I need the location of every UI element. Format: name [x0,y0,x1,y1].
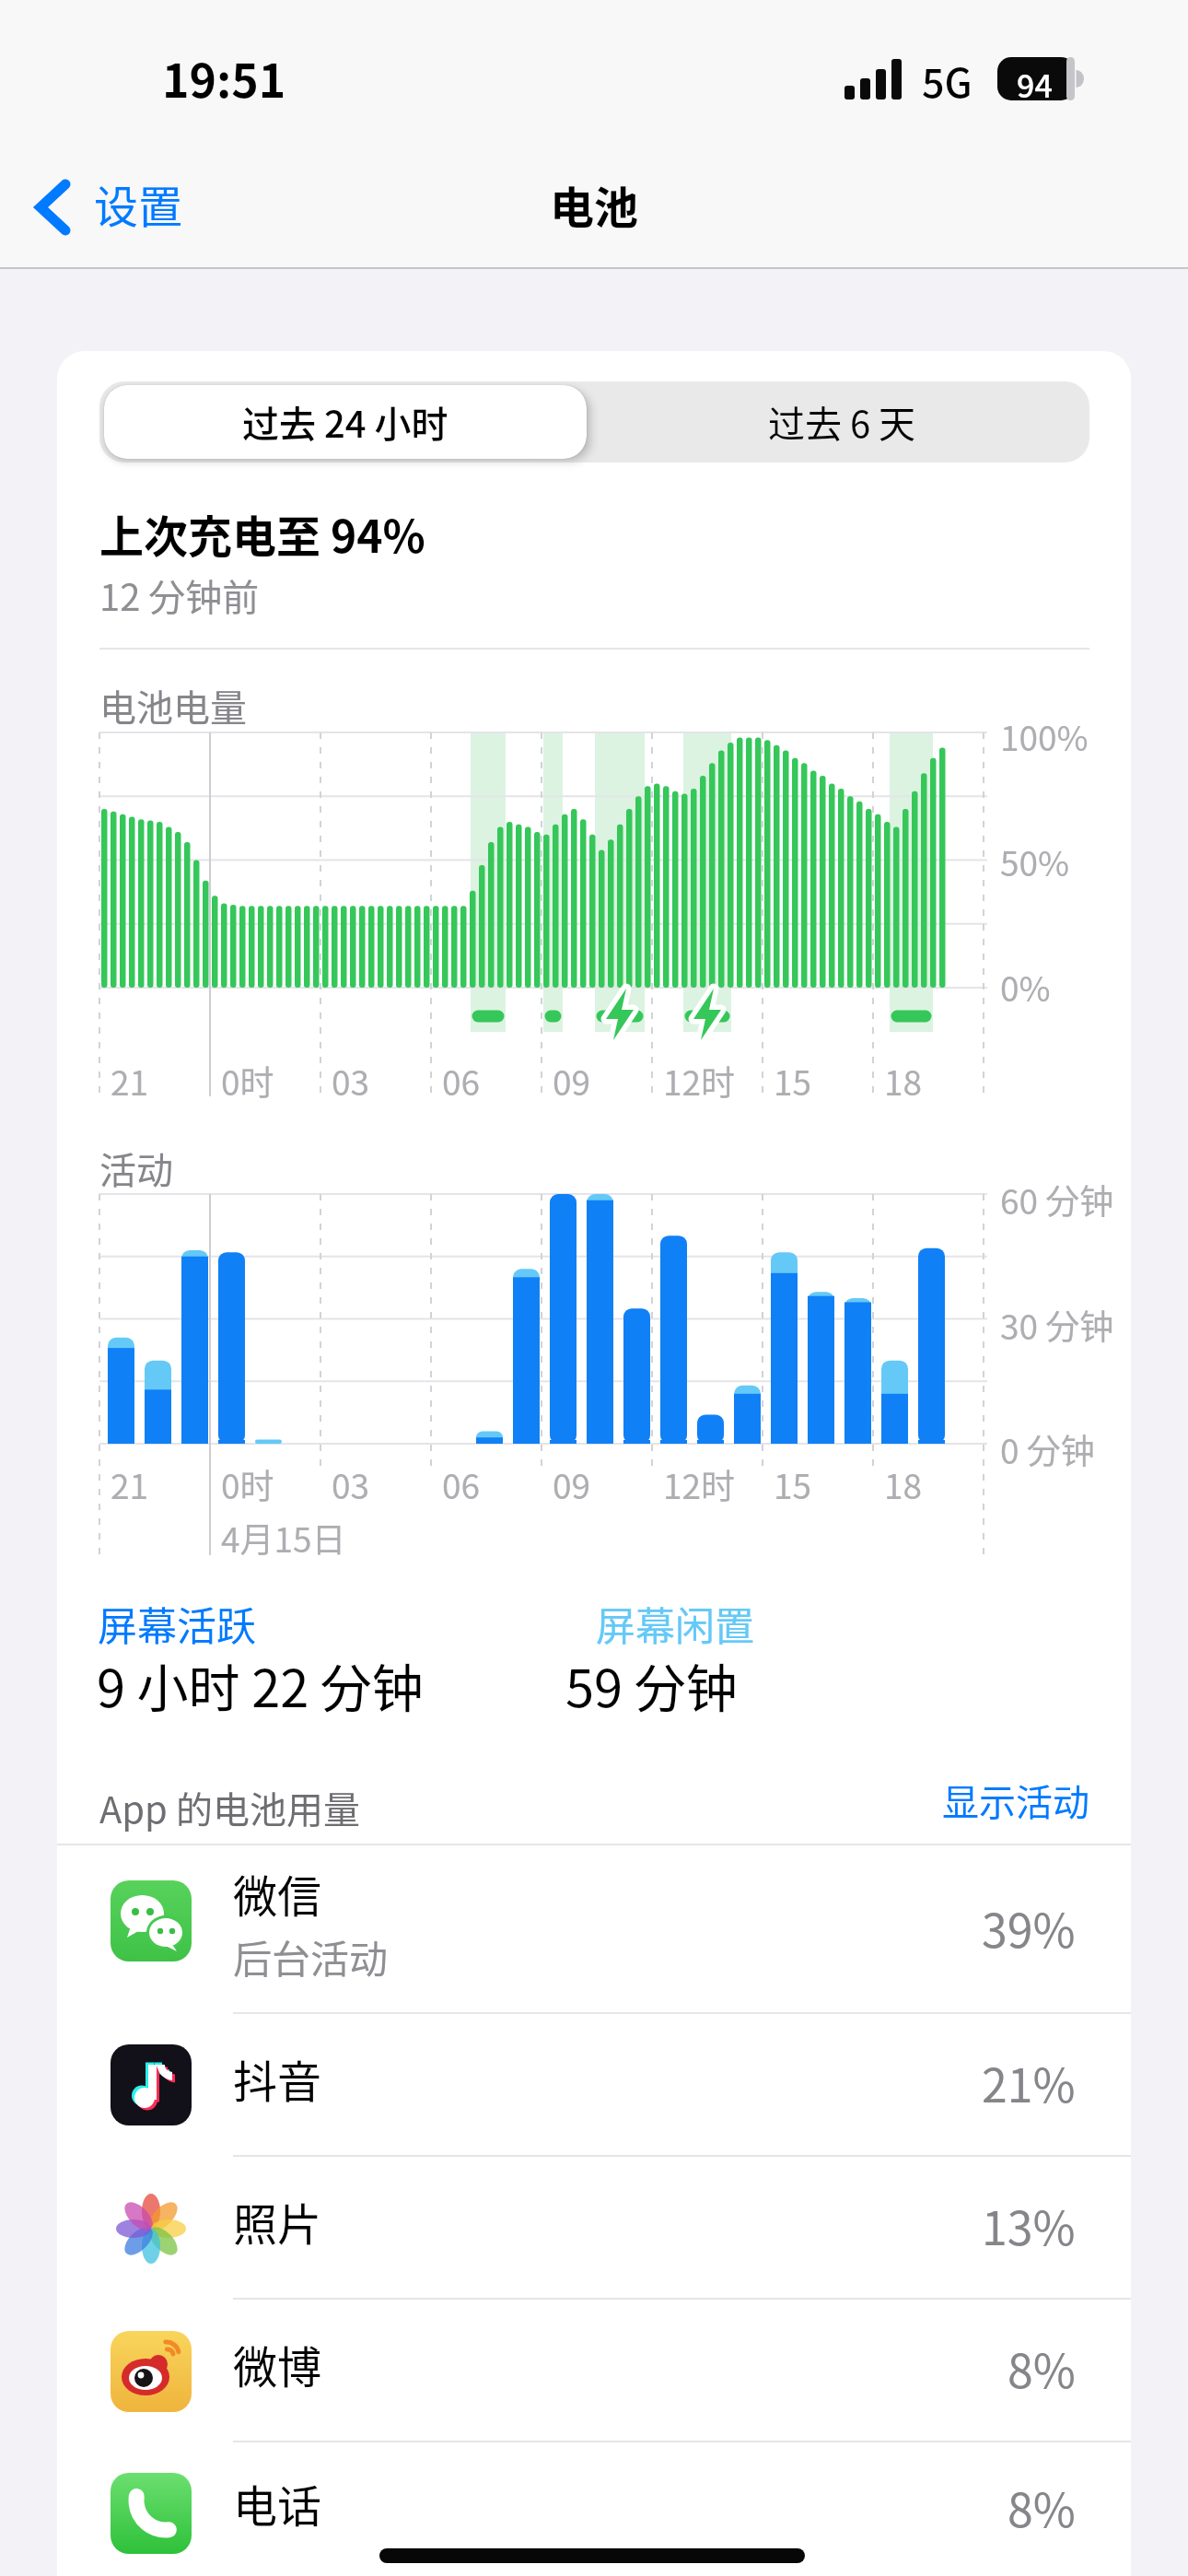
button[interactable]: 显示活动 [829,1774,1089,1829]
staticText: 设置 [94,171,183,236]
staticText: 12时 [663,1459,736,1509]
button[interactable] [594,385,1089,459]
staticText: 94 [1017,62,1053,107]
button[interactable] [57,2013,1131,2155]
staticText: 0% [1000,962,1051,1012]
staticText: App 的电池用量 [99,1781,360,1834]
staticText: 屏幕活跃 [98,1595,256,1652]
staticText: 09 [553,1056,591,1106]
staticText: 微博 [233,2332,322,2396]
button[interactable] [104,385,587,459]
button[interactable] [57,2299,1131,2441]
staticText: 抖音 [233,2046,322,2111]
staticText: 21 [111,1056,149,1106]
staticText: 微信 [233,1861,322,1926]
staticText: 0 分钟 [1000,1424,1095,1474]
button[interactable] [18,166,221,240]
staticText: 电池 [550,172,639,237]
staticText: 03 [332,1056,370,1106]
staticText: 50% [1000,837,1070,886]
staticText: 电池电量 [99,679,247,732]
staticText: 电话 [233,2471,322,2535]
staticText: 06 [442,1056,481,1106]
staticText: 过去 6 天 [768,395,916,449]
button[interactable] [57,2441,1131,2576]
staticText: 30 分钟 [1000,1300,1114,1350]
staticText: 显示活动 [942,1774,1089,1827]
staticText: 100% [1000,711,1089,761]
staticText: 9 小时 22 分钟 [97,1647,424,1722]
staticText: 15 [774,1459,812,1509]
staticText: 过去 24 小时 [242,395,448,449]
staticText: 后台活动 [233,1928,389,1985]
staticText: 8% [1007,2335,1076,2401]
staticText: 0时 [221,1056,274,1106]
staticText: 18 [884,1459,923,1509]
staticText: 09 [553,1459,591,1509]
staticText: 5G [922,52,973,109]
staticText: 12时 [663,1056,736,1106]
staticText: 0时 [221,1459,274,1509]
staticText: 上次充电至 94% [99,501,425,566]
staticText: 15 [774,1056,812,1106]
staticText: 12 分钟前 [99,568,260,622]
staticText: 59 分钟 [565,1647,738,1722]
staticText: 4月15日 [221,1513,346,1563]
button[interactable] [57,1845,1131,2013]
staticText: 18 [884,1056,923,1106]
staticText: 21 [111,1459,149,1509]
staticText: 8% [1007,2474,1076,2540]
staticText: 03 [332,1459,370,1509]
staticText: 39% [982,1894,1076,1961]
staticText: 照片 [233,2189,322,2254]
staticText: 06 [442,1459,481,1509]
staticText: 19:51 [162,44,286,111]
staticText: 60 分钟 [1000,1175,1114,1224]
staticText: 13% [982,2192,1076,2258]
staticText: 活动 [99,1142,173,1195]
button[interactable] [57,2156,1131,2298]
staticText: 屏幕闲置 [596,1595,754,1652]
staticText: 21% [982,2049,1076,2115]
